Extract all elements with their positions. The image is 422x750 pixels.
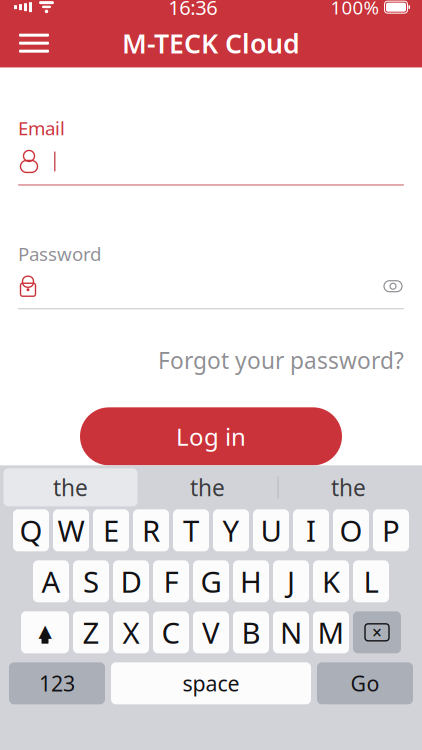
staticText: M-TECK Cloud xyxy=(122,25,300,61)
staticText: ▲ xyxy=(38,621,51,641)
staticText: space xyxy=(182,669,239,697)
button[interactable]: U xyxy=(253,509,289,551)
staticText: Go xyxy=(350,669,379,697)
button[interactable]: the xyxy=(137,468,277,506)
staticText: J xyxy=(287,562,295,601)
staticText: Email xyxy=(18,116,65,140)
button[interactable]: B xyxy=(233,611,269,653)
button[interactable]: O xyxy=(333,509,369,551)
button[interactable]: G xyxy=(193,560,229,602)
staticText: 123 xyxy=(39,669,75,697)
staticText: the xyxy=(53,472,88,502)
staticText: R xyxy=(142,511,160,550)
button[interactable]: Show password xyxy=(382,276,404,296)
button[interactable]: Y xyxy=(213,509,249,551)
button[interactable]: Z xyxy=(73,611,109,653)
button[interactable]: D xyxy=(113,560,149,602)
staticText: H xyxy=(240,562,262,601)
staticText: U xyxy=(260,511,281,550)
staticText: I xyxy=(306,511,316,550)
staticText: A xyxy=(41,562,60,601)
staticText: Forgot your password? xyxy=(158,345,404,375)
button[interactable]: C xyxy=(153,611,189,653)
button[interactable]: F xyxy=(153,560,189,602)
button[interactable]: Go xyxy=(317,662,413,704)
staticText: F xyxy=(163,562,178,601)
button[interactable]: A xyxy=(33,560,69,602)
button[interactable]: K xyxy=(313,560,349,602)
staticText: W xyxy=(57,511,84,550)
button[interactable]: W xyxy=(53,509,89,551)
button[interactable]: the xyxy=(3,468,137,506)
button[interactable]: M xyxy=(313,611,349,653)
staticText: B xyxy=(241,613,260,652)
staticText: N xyxy=(280,613,302,652)
button[interactable]: Log in xyxy=(80,407,342,465)
staticText: P xyxy=(382,511,400,550)
button[interactable]: 123 xyxy=(9,662,105,704)
staticText: E xyxy=(103,511,119,550)
staticText: O xyxy=(339,511,362,550)
button[interactable]: Menu xyxy=(12,26,56,60)
button[interactable]: H xyxy=(233,560,269,602)
button[interactable]: Shift xyxy=(21,611,69,653)
staticText: V xyxy=(202,613,220,652)
staticText: Q xyxy=(19,511,42,550)
button[interactable]: E xyxy=(93,509,129,551)
button[interactable]: Password field xyxy=(18,274,38,298)
button[interactable]: I xyxy=(293,509,329,551)
staticText: G xyxy=(200,562,221,601)
staticText: the xyxy=(190,472,225,502)
staticText: the xyxy=(331,472,366,502)
staticText: S xyxy=(83,562,99,601)
button[interactable]: R xyxy=(133,509,169,551)
staticText: × xyxy=(372,621,382,644)
button[interactable]: Forgot your password? xyxy=(158,339,404,381)
button[interactable]: Delete xyxy=(353,611,401,653)
button[interactable]: Q xyxy=(13,509,49,551)
button[interactable]: L xyxy=(353,560,389,602)
staticText: 16:36 xyxy=(168,0,217,20)
button[interactable]: P xyxy=(373,509,409,551)
button[interactable]: V xyxy=(193,611,229,653)
staticText: Z xyxy=(82,613,99,652)
staticText: T xyxy=(183,511,199,550)
staticText: X xyxy=(122,613,139,652)
staticText: K xyxy=(322,562,340,601)
staticText: Log in xyxy=(176,420,246,452)
button[interactable]: J xyxy=(273,560,309,602)
button[interactable] xyxy=(0,140,422,185)
button[interactable]: N xyxy=(273,611,309,653)
staticText: 100% xyxy=(330,0,379,20)
button[interactable]: X xyxy=(113,611,149,653)
staticText: Y xyxy=(222,511,239,550)
button[interactable]: space xyxy=(111,662,311,704)
staticText: Password xyxy=(18,241,101,266)
staticText: C xyxy=(161,613,180,652)
button[interactable]: T xyxy=(173,509,209,551)
staticText: L xyxy=(363,562,378,601)
staticText: D xyxy=(120,562,141,601)
button[interactable]: S xyxy=(73,560,109,602)
staticText: M xyxy=(317,613,344,652)
button[interactable]: the xyxy=(278,468,418,506)
